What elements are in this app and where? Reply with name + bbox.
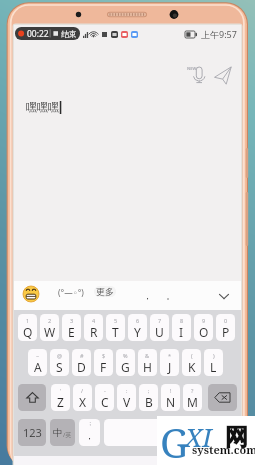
button[interactable]: 5 bbox=[106, 314, 125, 341]
button[interactable]: 1 bbox=[18, 314, 37, 341]
staticText: 9 bbox=[202, 317, 206, 324]
button[interactable]: 7 bbox=[150, 314, 169, 341]
staticText: L bbox=[210, 359, 217, 375]
button[interactable]: 0 bbox=[216, 314, 235, 341]
staticText: ( bbox=[191, 352, 193, 359]
staticText: system.com bbox=[192, 442, 255, 457]
button[interactable]: ? bbox=[183, 384, 202, 411]
staticText: ， bbox=[85, 430, 94, 441]
button[interactable]: * bbox=[160, 349, 179, 376]
staticText: ； bbox=[87, 419, 93, 427]
staticText: ! bbox=[170, 387, 172, 394]
staticText: J bbox=[168, 359, 172, 375]
button[interactable]: Shift bbox=[18, 384, 46, 411]
button[interactable]: 3 bbox=[62, 314, 81, 341]
button[interactable]: Space bbox=[104, 419, 237, 446]
button[interactable]: Send bbox=[212, 64, 236, 88]
button[interactable]: 6 bbox=[128, 314, 147, 341]
staticText: ; bbox=[148, 387, 150, 394]
staticText: V bbox=[123, 394, 131, 410]
staticText: 网 bbox=[225, 423, 248, 452]
staticText: Y bbox=[134, 324, 141, 340]
staticText: G bbox=[121, 359, 130, 375]
staticText: 5 bbox=[114, 317, 118, 324]
button[interactable]: / bbox=[73, 384, 92, 411]
button[interactable]: ! bbox=[161, 384, 180, 411]
staticText: 123 bbox=[23, 425, 42, 440]
staticText: ' bbox=[60, 387, 62, 394]
staticText: / bbox=[81, 387, 84, 394]
staticText: P bbox=[222, 324, 230, 340]
staticText: K bbox=[188, 359, 196, 375]
staticText: 。 bbox=[166, 290, 175, 301]
staticText: 嘿嘿嘿 bbox=[26, 100, 59, 114]
button[interactable]: ； bbox=[79, 419, 100, 446]
staticText: * bbox=[168, 352, 172, 359]
staticText: S bbox=[56, 359, 63, 375]
staticText: 4 bbox=[92, 317, 96, 324]
staticText: 更多 bbox=[96, 286, 114, 297]
staticText: # bbox=[80, 352, 84, 359]
staticText: 00:22 bbox=[27, 28, 49, 40]
staticText: U bbox=[155, 324, 164, 340]
staticText: ~ bbox=[36, 352, 40, 359]
staticText: (°—◦°) bbox=[58, 287, 84, 299]
button[interactable]: Emoji bbox=[23, 286, 39, 302]
staticText: A bbox=[34, 359, 42, 375]
staticText: ? bbox=[191, 387, 194, 394]
button[interactable]: 8 bbox=[172, 314, 191, 341]
staticText: ， bbox=[143, 290, 152, 301]
button[interactable]: 9 bbox=[194, 314, 213, 341]
button[interactable]: : bbox=[117, 384, 136, 411]
staticText: - bbox=[104, 387, 106, 394]
staticText: O bbox=[199, 324, 209, 340]
button[interactable]: ; bbox=[139, 384, 158, 411]
staticText: C bbox=[101, 394, 109, 410]
staticText: 6 bbox=[136, 317, 140, 324]
button[interactable]: Hide keyboard bbox=[213, 281, 234, 310]
staticText: T bbox=[112, 324, 119, 340]
staticText: F bbox=[100, 359, 107, 375]
staticText: I bbox=[179, 324, 184, 340]
staticText: 7 bbox=[158, 317, 162, 324]
staticText: NEW bbox=[187, 66, 197, 71]
staticText: 1 bbox=[26, 317, 30, 324]
staticText: 结束 bbox=[61, 29, 77, 39]
button[interactable]: ( bbox=[182, 349, 201, 376]
button[interactable]: 更多 bbox=[94, 286, 116, 297]
staticText: 2 bbox=[48, 317, 52, 324]
button[interactable]: % bbox=[116, 349, 135, 376]
staticText: 0 bbox=[224, 317, 228, 324]
staticText: % bbox=[123, 352, 128, 359]
button[interactable]: $ bbox=[94, 349, 113, 376]
button[interactable]: 123 bbox=[18, 419, 46, 446]
staticText: G bbox=[160, 415, 189, 465]
staticText: : bbox=[126, 387, 128, 394]
button[interactable]: ' bbox=[51, 384, 70, 411]
staticText: 8 bbox=[180, 317, 184, 324]
staticText: R bbox=[90, 324, 98, 340]
button[interactable]: # bbox=[72, 349, 91, 376]
staticText: W bbox=[44, 324, 56, 340]
staticText: Z bbox=[57, 394, 64, 410]
button[interactable]: ~ bbox=[28, 349, 47, 376]
staticText: D bbox=[77, 359, 86, 375]
button[interactable]: 4 bbox=[84, 314, 103, 341]
button[interactable]: & bbox=[138, 349, 157, 376]
staticText: E bbox=[68, 324, 75, 340]
button[interactable]: 2 bbox=[40, 314, 59, 341]
staticText: & bbox=[145, 352, 150, 359]
button[interactable]: - bbox=[95, 384, 114, 411]
button[interactable]: Backspace bbox=[208, 384, 237, 411]
button[interactable]: (°—◦°) bbox=[56, 287, 86, 299]
button[interactable]: @ bbox=[50, 349, 69, 376]
button[interactable]: 中 bbox=[50, 419, 75, 446]
button[interactable]: Voice input bbox=[185, 63, 207, 85]
staticText: N bbox=[166, 394, 176, 410]
staticText: 中 bbox=[53, 427, 63, 439]
button[interactable]: 。 bbox=[161, 281, 179, 310]
button[interactable]: ) bbox=[204, 349, 223, 376]
button[interactable]: 00:22 bbox=[15, 27, 80, 40]
staticText: @ bbox=[57, 352, 62, 359]
button[interactable]: ， bbox=[138, 281, 156, 310]
